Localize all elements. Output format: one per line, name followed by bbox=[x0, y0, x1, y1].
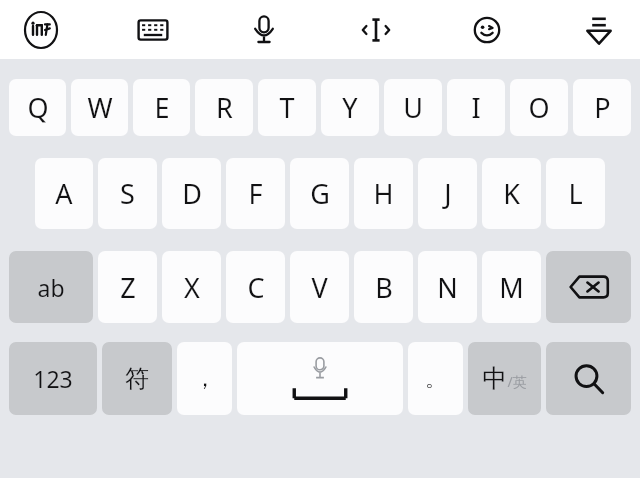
button[interactable]: P bbox=[573, 79, 631, 136]
staticText: X bbox=[184, 269, 200, 306]
button[interactable]: 符 bbox=[102, 342, 172, 415]
button[interactable]: K bbox=[482, 158, 541, 229]
button[interactable]: D bbox=[162, 158, 221, 229]
button[interactable]: M bbox=[482, 251, 541, 323]
staticText: 符 bbox=[125, 364, 149, 394]
staticText: F bbox=[248, 175, 263, 212]
button[interactable]: H bbox=[354, 158, 413, 229]
button[interactable]: 中/英 bbox=[468, 342, 541, 415]
staticText: ， bbox=[194, 365, 216, 393]
staticText: J bbox=[444, 175, 452, 212]
button[interactable]: E bbox=[133, 79, 190, 136]
button[interactable]: 。 bbox=[408, 342, 463, 415]
button[interactable]: N bbox=[418, 251, 477, 323]
button[interactable]: Z bbox=[98, 251, 157, 323]
button[interactable]: U bbox=[384, 79, 442, 136]
button[interactable]: ab bbox=[9, 251, 93, 323]
staticText: P bbox=[594, 89, 611, 126]
button[interactable]: Y bbox=[321, 79, 379, 136]
button[interactable]: Emoji bbox=[460, 3, 514, 57]
button[interactable]: G bbox=[290, 158, 349, 229]
button[interactable]: J bbox=[418, 158, 477, 229]
staticText: 。 bbox=[425, 366, 446, 392]
staticText: M bbox=[499, 269, 524, 306]
button[interactable]: 123 bbox=[9, 342, 97, 415]
button[interactable]: F bbox=[226, 158, 285, 229]
staticText: ab bbox=[37, 272, 65, 303]
button[interactable]: A bbox=[35, 158, 93, 229]
staticText: W bbox=[87, 89, 113, 126]
button[interactable]: Search bbox=[546, 342, 631, 415]
staticText: G bbox=[310, 175, 330, 212]
staticText: Y bbox=[342, 89, 358, 126]
staticText: R bbox=[216, 89, 233, 126]
button[interactable]: ， bbox=[177, 342, 232, 415]
button[interactable]: X bbox=[162, 251, 221, 323]
staticText: O bbox=[528, 89, 550, 126]
staticText: Z bbox=[120, 269, 136, 306]
staticText: N bbox=[437, 269, 458, 306]
staticText: B bbox=[375, 269, 393, 306]
button[interactable]: W bbox=[71, 79, 128, 136]
button[interactable]: Move cursor bbox=[349, 3, 403, 57]
button[interactable]: S bbox=[98, 158, 157, 229]
staticText: D bbox=[182, 175, 202, 212]
button[interactable]: Switch keyboard bbox=[126, 3, 180, 57]
staticText: A bbox=[55, 175, 73, 212]
staticText: Q bbox=[27, 89, 49, 126]
staticText: 中/英 bbox=[482, 363, 527, 394]
staticText: H bbox=[373, 175, 394, 212]
button[interactable]: B bbox=[354, 251, 413, 323]
button[interactable]: V bbox=[290, 251, 349, 323]
staticText: L bbox=[568, 175, 583, 212]
button[interactable]: C bbox=[226, 251, 285, 323]
button[interactable]: O bbox=[510, 79, 568, 136]
button[interactable]: L bbox=[546, 158, 605, 229]
staticText: T bbox=[279, 89, 295, 126]
staticText: 123 bbox=[33, 363, 73, 394]
button[interactable]: Q bbox=[9, 79, 66, 136]
button[interactable]: Input method logo bbox=[14, 3, 68, 57]
button[interactable]: Hide keyboard bbox=[572, 3, 626, 57]
staticText: K bbox=[503, 175, 520, 212]
button[interactable]: Backspace bbox=[546, 251, 631, 323]
staticText: E bbox=[154, 89, 170, 126]
button[interactable]: R bbox=[195, 79, 253, 136]
staticText: U bbox=[403, 89, 423, 126]
button[interactable]: I bbox=[447, 79, 505, 136]
button[interactable]: T bbox=[258, 79, 316, 136]
button[interactable]: Space bbox=[237, 342, 403, 415]
staticText: C bbox=[247, 269, 265, 306]
button[interactable]: Voice input bbox=[237, 3, 291, 57]
staticText: I bbox=[471, 89, 481, 126]
staticText: V bbox=[311, 269, 328, 306]
staticText: S bbox=[120, 175, 135, 212]
